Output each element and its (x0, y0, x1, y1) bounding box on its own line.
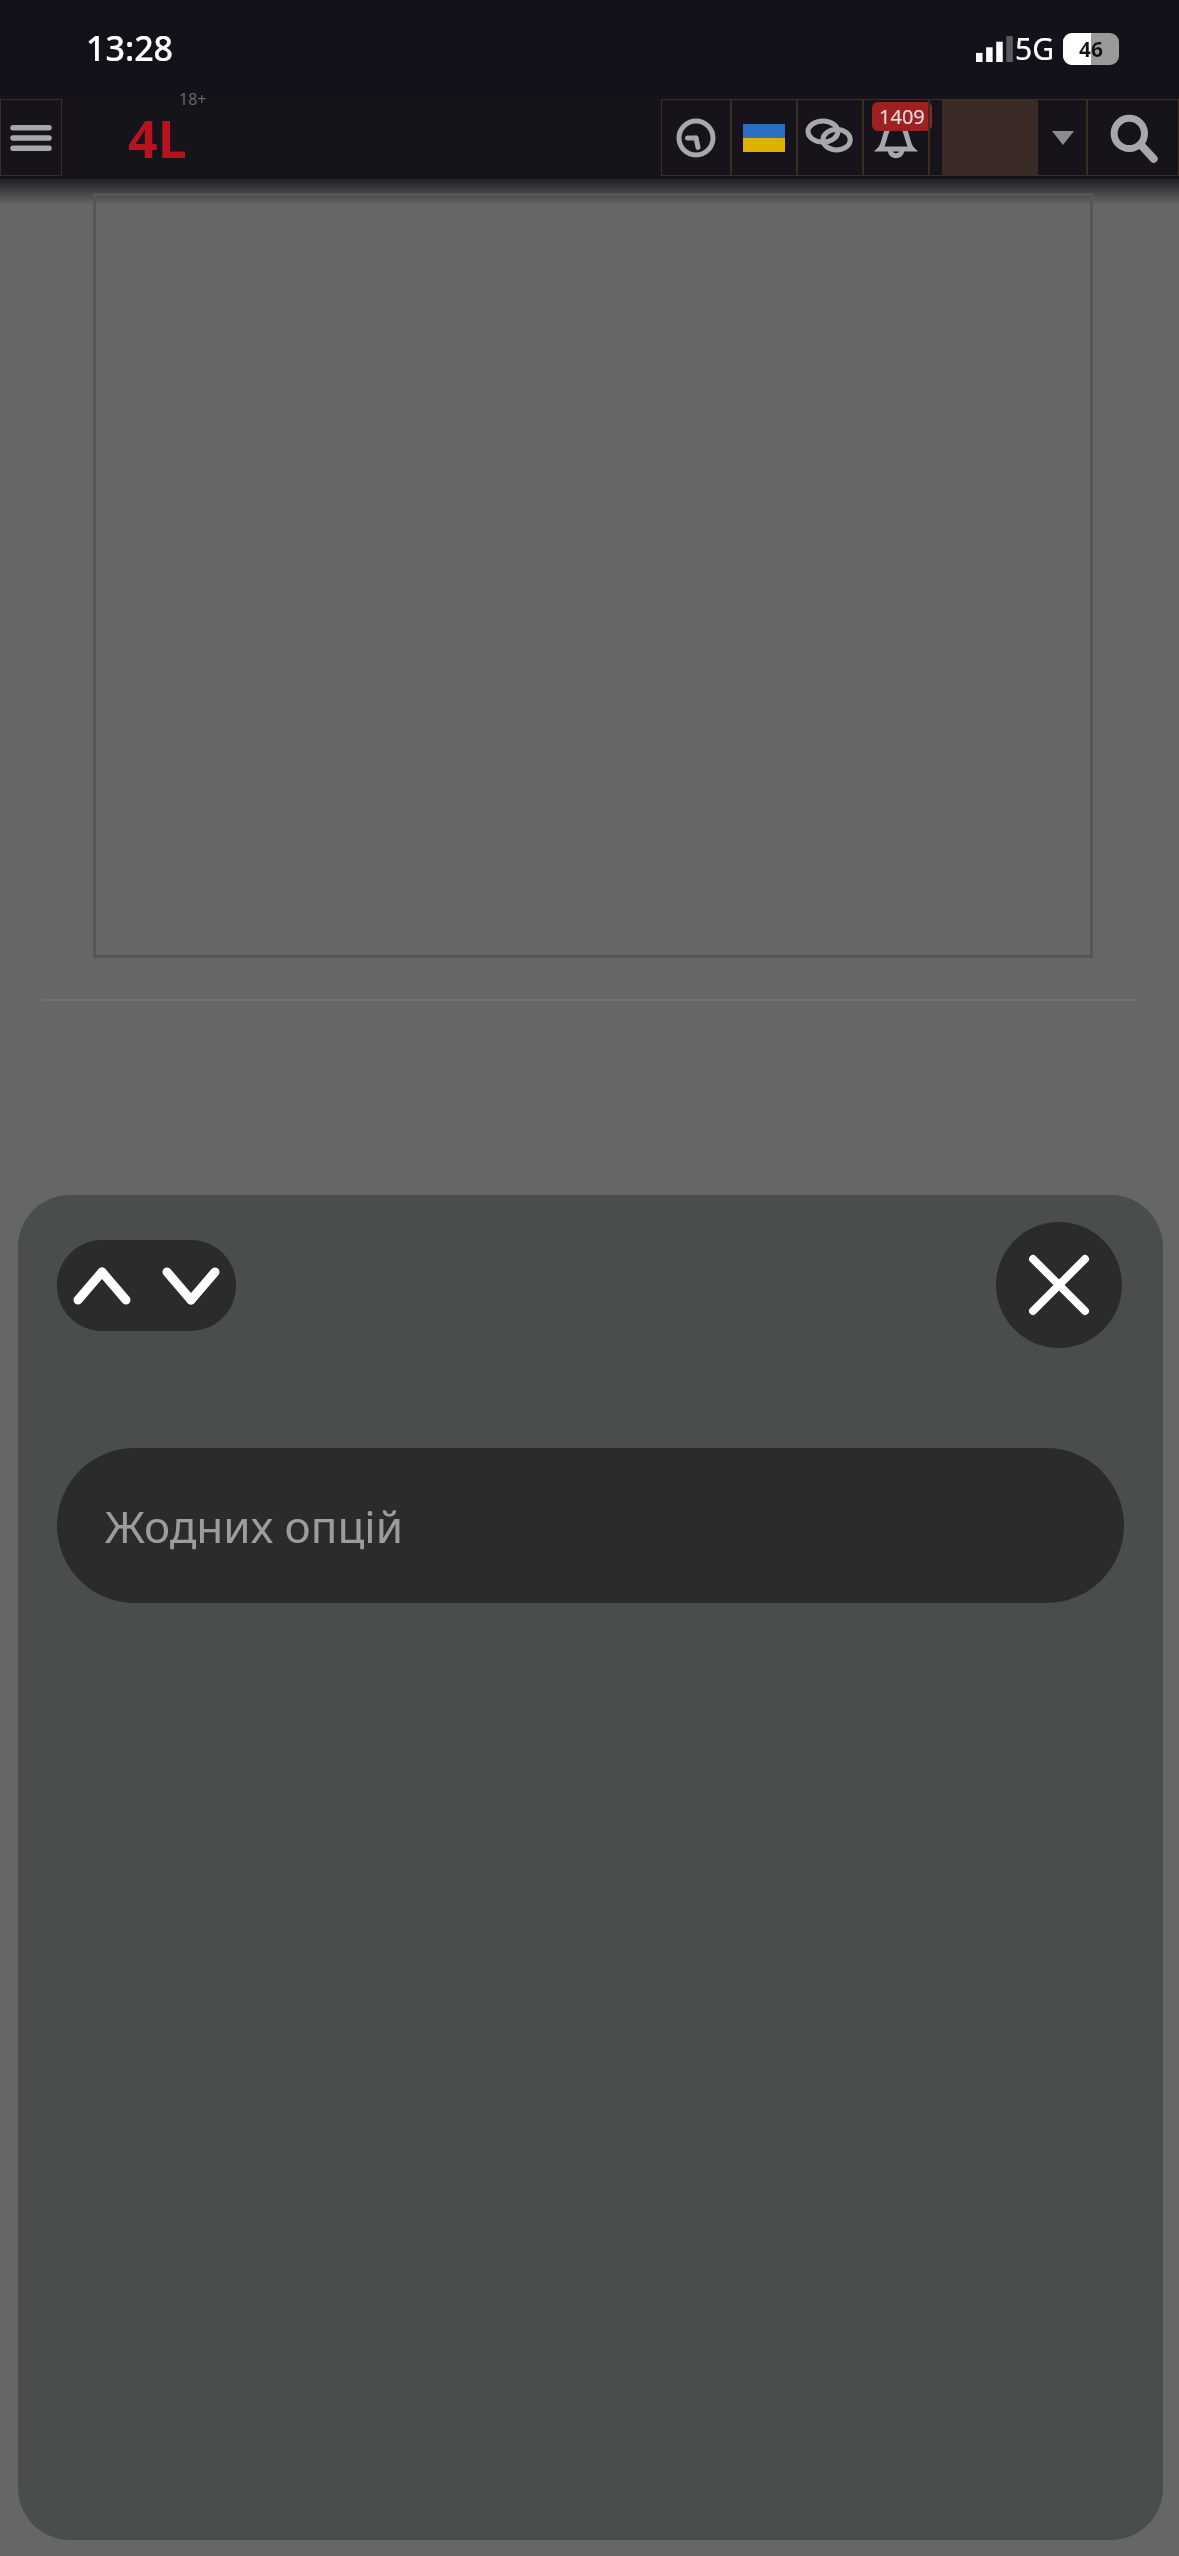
button[interactable]: Toolbar action (797, 99, 863, 176)
staticText: 46 (1079, 35, 1104, 64)
staticText: 13:28 (86, 25, 174, 71)
button[interactable]: Toolbar action (731, 99, 797, 176)
button[interactable]: Жодних опцій (57, 1448, 1124, 1603)
button[interactable]: Close (996, 1222, 1122, 1348)
staticText: 4L (128, 102, 187, 173)
button[interactable]: Toolbar action (929, 99, 1087, 176)
staticText: 18+ (179, 88, 207, 110)
staticText: Жодних опцій (105, 1496, 404, 1556)
button[interactable]: Toolbar action (863, 99, 929, 176)
button[interactable]: Toolbar action (661, 99, 731, 176)
button[interactable]: Next result (146, 1240, 236, 1331)
staticText: 1409 (879, 103, 925, 130)
button[interactable]: Toolbar action (1087, 99, 1179, 176)
button[interactable]: Previous result (57, 1240, 146, 1331)
button[interactable]: Toolbar action (0, 99, 62, 176)
staticText: 5G (1015, 28, 1054, 69)
